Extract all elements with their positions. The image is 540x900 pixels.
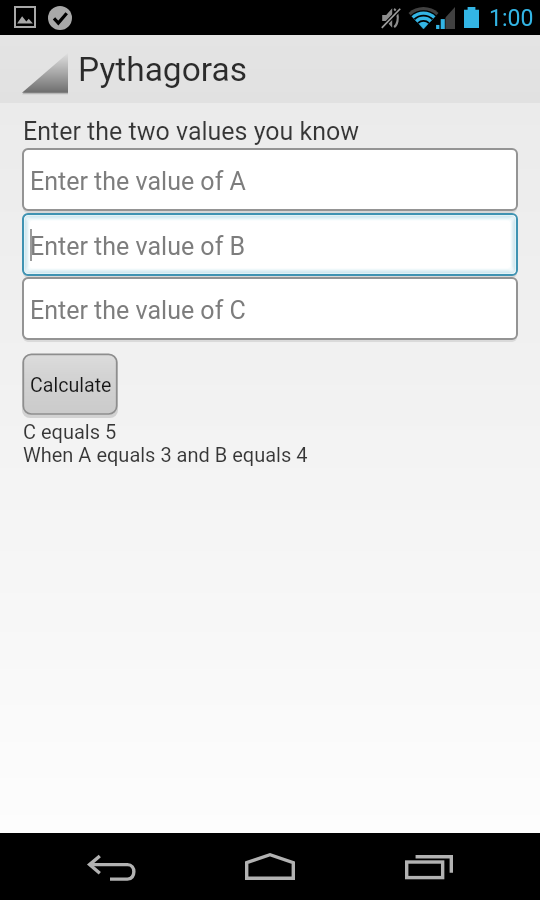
button[interactable]: Calculate bbox=[22, 353, 118, 417]
button[interactable]: Back bbox=[60, 833, 170, 900]
staticText: When A equals 3 and B equals 4 bbox=[23, 443, 308, 466]
button[interactable]: Enter the value of A bbox=[22, 148, 518, 212]
staticText: 1:00 bbox=[489, 5, 534, 32]
button[interactable]: Enter the value of B bbox=[22, 213, 518, 277]
staticText: Enter the two values you know bbox=[23, 117, 360, 146]
staticText: Pythagoras bbox=[78, 50, 247, 89]
button[interactable]: Recent apps bbox=[385, 833, 475, 900]
staticText: Calculate bbox=[30, 374, 112, 397]
staticText: C equals 5 bbox=[23, 420, 117, 443]
staticText: Enter the value of A bbox=[30, 167, 246, 196]
button[interactable]: Home bbox=[225, 833, 315, 900]
staticText: Enter the value of B bbox=[30, 232, 246, 261]
staticText: Enter the value of C bbox=[30, 296, 246, 325]
button[interactable]: Enter the value of C bbox=[22, 277, 518, 341]
